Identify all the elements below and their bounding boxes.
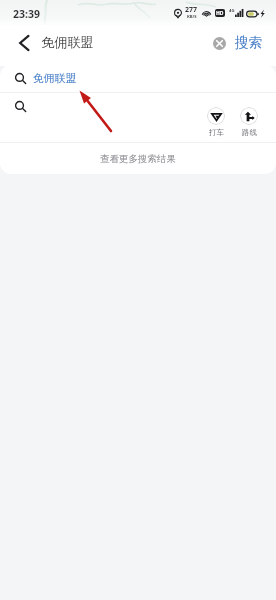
staticText: 277	[185, 5, 198, 15]
button[interactable]: 打车	[207, 107, 225, 137]
staticText: HD	[216, 10, 224, 17]
staticText: 查看更多搜索结果	[100, 153, 176, 165]
staticText: KB/S	[187, 14, 197, 20]
staticText: 23:39	[13, 7, 40, 21]
staticText: 打车	[209, 128, 224, 137]
staticText: 免佣联盟	[33, 72, 77, 86]
staticText: 路线	[242, 128, 257, 137]
staticText: 搜索	[235, 34, 262, 51]
button[interactable]: 路线	[240, 107, 258, 137]
button[interactable]: 搜索	[235, 34, 276, 51]
button[interactable]: 免佣联盟	[0, 65, 276, 92]
button[interactable]: Back	[16, 35, 32, 51]
button[interactable]: 查看更多搜索结果	[0, 143, 276, 174]
staticText: 4G	[229, 8, 235, 14]
staticText: 免佣联盟	[41, 34, 94, 51]
button[interactable]: Clear	[211, 35, 227, 51]
